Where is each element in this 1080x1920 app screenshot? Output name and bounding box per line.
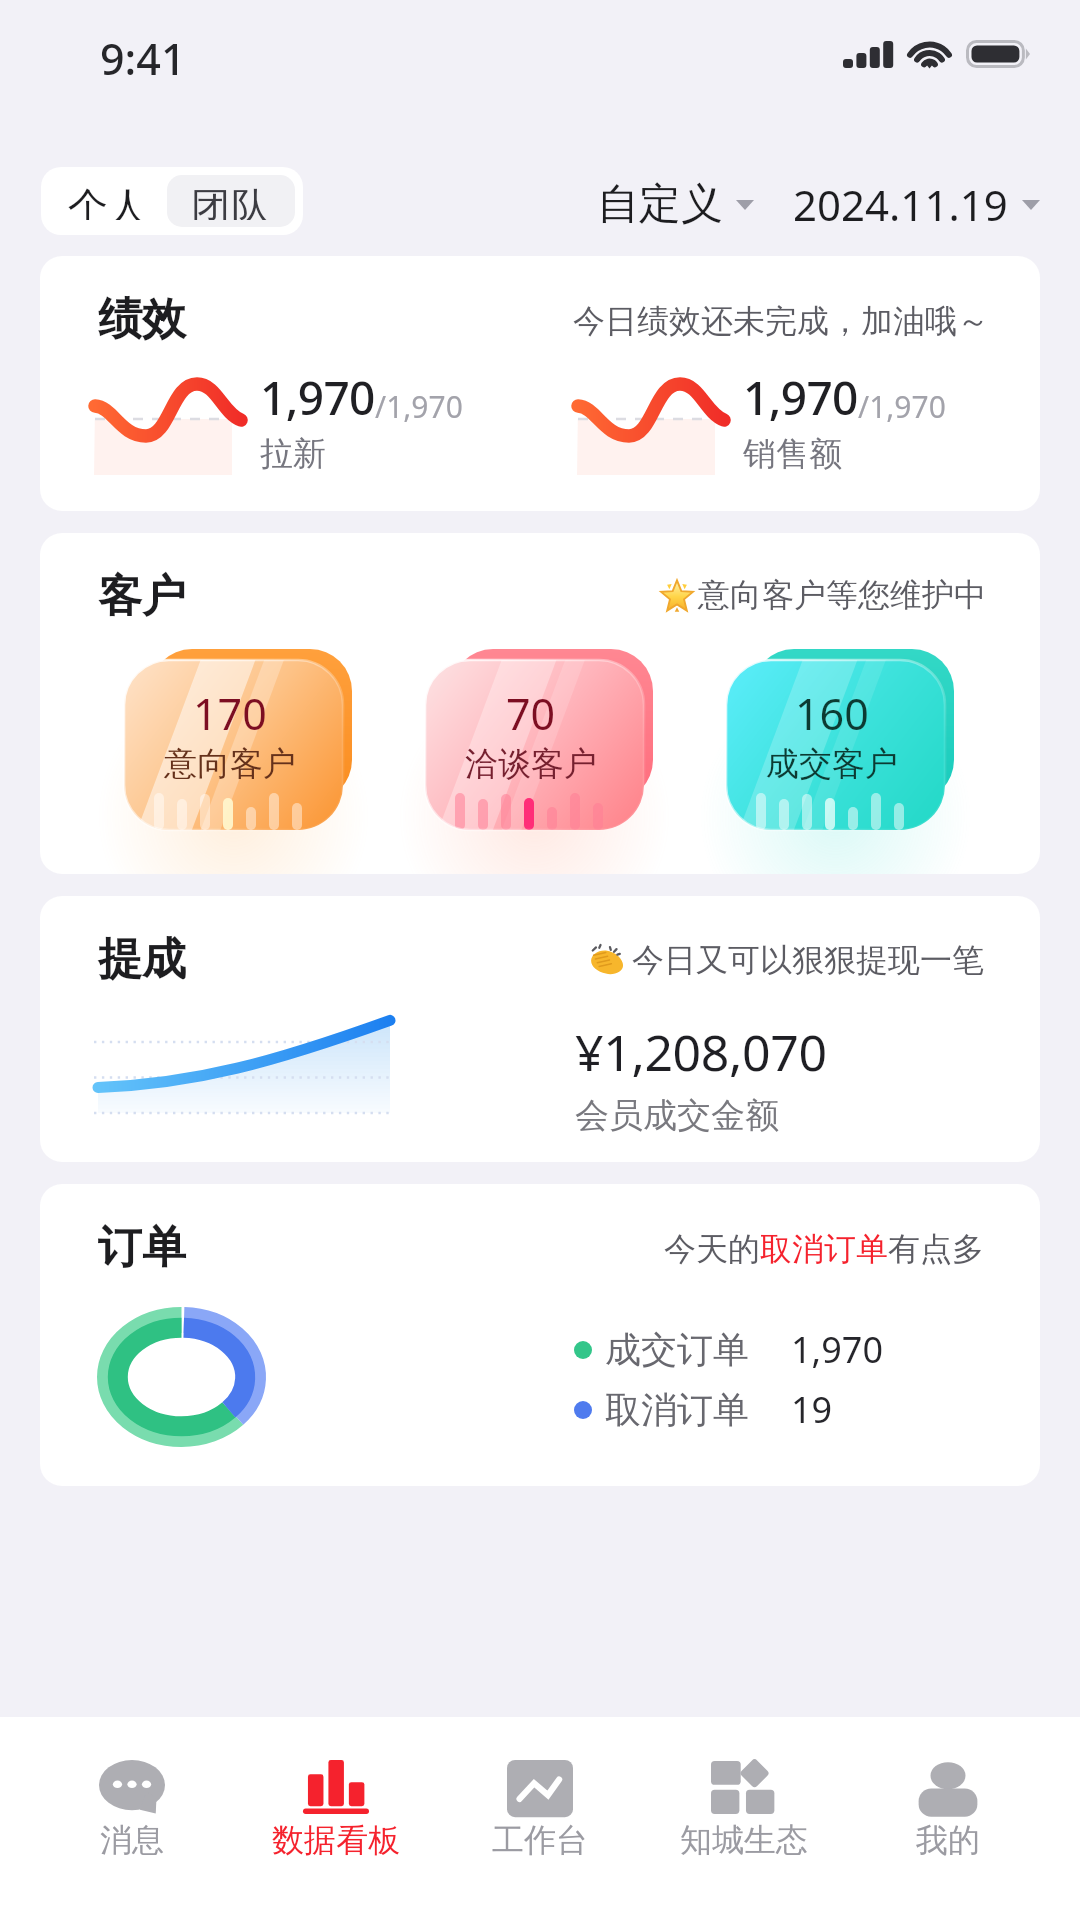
staticText: /1,970 (858, 386, 946, 427)
button[interactable]: Workbench (438, 1717, 642, 1920)
staticText: 知城生态 (680, 1820, 808, 1860)
button[interactable]: 个人 (49, 175, 167, 227)
staticText: 有点多 (888, 1229, 984, 1269)
button[interactable]: Dashboard (234, 1717, 438, 1920)
button[interactable]: Ecosystem (642, 1717, 846, 1920)
staticText: 取消订单 (605, 1387, 749, 1432)
staticText: 19 (791, 1385, 833, 1434)
button[interactable]: 个人 (41, 167, 303, 235)
staticText: 订单 (98, 1220, 186, 1275)
staticText: 自定义 (597, 178, 723, 231)
staticText: 我的 (916, 1820, 980, 1860)
staticText: 1,970 (743, 366, 858, 429)
button[interactable]: 绩效 (40, 256, 1040, 511)
staticText: 160 (795, 684, 869, 743)
button[interactable]: 70 (405, 637, 690, 857)
staticText: 意向客户等您维护中 (698, 575, 986, 615)
staticText: 提成 (98, 932, 186, 987)
button[interactable]: Profile (846, 1717, 1050, 1920)
staticText: 成交客户 (766, 743, 898, 785)
button[interactable]: Messages (30, 1717, 234, 1920)
staticText: 9:41 (100, 29, 186, 88)
staticText: 2024.11.19 (793, 176, 1008, 233)
staticText: 团队 (191, 182, 271, 220)
staticText: 会员成交金额 (575, 1094, 779, 1137)
button[interactable]: 客户 (40, 533, 1040, 874)
staticText: 1,970 (260, 366, 375, 429)
staticText: 70 (506, 684, 556, 743)
staticText: /1,970 (375, 386, 463, 427)
button[interactable]: 160 (706, 637, 991, 857)
staticText: 个人 (68, 182, 148, 220)
button[interactable]: 提成 (40, 896, 1040, 1162)
staticText: 洽谈客户 (465, 743, 597, 785)
button[interactable]: 170 (104, 637, 389, 857)
staticText: 拉新 (260, 433, 326, 475)
staticText: 销售额 (743, 433, 842, 475)
staticText: 170 (193, 684, 267, 743)
staticText: 数据看板 (272, 1820, 400, 1860)
staticText: 消息 (100, 1820, 164, 1860)
button[interactable]: 选择日期 (787, 168, 1046, 241)
staticText: 1,970 (791, 1325, 884, 1374)
button[interactable]: 订单 (40, 1184, 1040, 1486)
staticText: 客户 (98, 569, 186, 624)
staticText: 取消订单 (760, 1229, 888, 1269)
staticText: 工作台 (492, 1820, 588, 1860)
button[interactable]: 团队 (167, 175, 295, 227)
staticText: 今日绩效还未完成，加油哦～ (573, 301, 989, 341)
staticText: 今天的 (664, 1229, 760, 1269)
staticText: 意向客户 (164, 743, 296, 785)
staticText: ¥1,208,070 (575, 1018, 827, 1086)
staticText: 成交订单 (605, 1327, 749, 1372)
staticText: 绩效 (98, 292, 186, 347)
staticText: 今日又可以狠狠提现一笔 (632, 940, 984, 980)
button[interactable]: 选择时间范围 (591, 170, 760, 239)
